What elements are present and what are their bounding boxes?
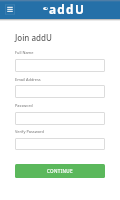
button[interactable]	[15, 59, 105, 72]
button[interactable]	[15, 138, 105, 150]
staticText: Password	[15, 103, 33, 108]
button[interactable]: Menu	[4, 3, 16, 15]
button[interactable]	[15, 85, 105, 98]
button[interactable]	[15, 112, 105, 125]
staticText: Email Address	[15, 77, 41, 82]
staticText: Full Name	[15, 50, 34, 55]
staticText: CONTINUE	[47, 168, 73, 174]
button[interactable]: CONTINUE	[15, 164, 105, 178]
staticText: addU	[49, 1, 86, 17]
staticText: Verify Password	[15, 129, 44, 134]
staticText: Join addU	[15, 32, 52, 43]
